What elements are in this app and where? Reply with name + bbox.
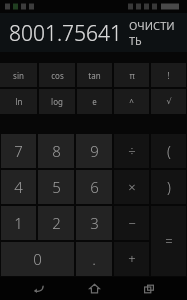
staticText: =: [165, 232, 173, 250]
button[interactable]: ^: [114, 89, 149, 114]
staticText: ): [167, 178, 171, 197]
staticText: tan: [88, 70, 101, 81]
staticText: 1: [14, 213, 23, 233]
button[interactable]: cos: [39, 63, 75, 87]
button[interactable]: ÷: [114, 134, 149, 168]
button[interactable]: 3: [76, 206, 112, 240]
staticText: log: [51, 96, 63, 107]
staticText: 4: [14, 177, 23, 197]
button[interactable]: ×: [114, 170, 149, 204]
button[interactable]: π: [114, 63, 149, 87]
button[interactable]: log: [39, 89, 75, 114]
staticText: −: [128, 214, 136, 232]
staticText: ^: [129, 96, 134, 107]
button[interactable]: tan: [77, 63, 112, 87]
button[interactable]: sin: [0, 63, 37, 87]
button[interactable]: 0: [1, 242, 74, 276]
button[interactable]: ОЧИСТИТЬ: [129, 18, 179, 48]
staticText: 6: [90, 177, 99, 197]
staticText: 2: [52, 213, 61, 233]
staticText: ÷: [128, 142, 136, 160]
staticText: 3: [90, 213, 99, 233]
staticText: 0: [33, 249, 42, 269]
staticText: ×: [128, 178, 136, 196]
staticText: (: [167, 142, 171, 161]
staticText: 8001.75641: [9, 19, 123, 48]
button[interactable]: √: [151, 89, 186, 114]
staticText: 7: [14, 141, 23, 161]
staticText: π: [129, 70, 135, 81]
button[interactable]: 8001.75641: [0, 13, 187, 52]
button[interactable]: (: [151, 134, 186, 168]
button[interactable]: ln: [0, 89, 37, 114]
button[interactable]: Home: [77, 277, 111, 300]
staticText: !: [167, 70, 170, 81]
button[interactable]: 4: [1, 170, 36, 204]
button[interactable]: Recent apps: [132, 277, 166, 300]
button[interactable]: !: [151, 63, 186, 87]
button[interactable]: =: [151, 206, 186, 276]
staticText: 9: [90, 141, 99, 161]
staticText: ОЧИСТИТЬ: [129, 18, 179, 48]
button[interactable]: e: [77, 89, 112, 114]
staticText: cos: [51, 70, 64, 81]
button[interactable]: ): [151, 170, 186, 204]
staticText: .: [92, 249, 96, 269]
staticText: sin: [13, 70, 24, 81]
staticText: 5: [52, 177, 61, 197]
button[interactable]: 9: [76, 134, 112, 168]
staticText: √: [166, 97, 172, 106]
button[interactable]: 7: [1, 134, 36, 168]
button[interactable]: 6: [76, 170, 112, 204]
staticText: ln: [15, 96, 23, 107]
staticText: e: [92, 96, 97, 107]
button[interactable]: 2: [38, 206, 74, 240]
button[interactable]: +: [114, 242, 149, 276]
staticText: +: [128, 250, 136, 268]
button[interactable]: 5: [38, 170, 74, 204]
staticText: 8: [52, 141, 61, 161]
button[interactable]: −: [114, 206, 149, 240]
button[interactable]: 8: [38, 134, 74, 168]
button[interactable]: Back: [21, 277, 55, 300]
button[interactable]: 1: [1, 206, 36, 240]
